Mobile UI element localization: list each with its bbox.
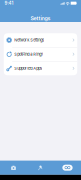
button[interactable]: SpotFind a Ring?	[4, 47, 77, 61]
button[interactable]: Supported Apps	[4, 61, 77, 75]
staticText: Supported Apps	[14, 66, 42, 71]
button[interactable]: Network Settings	[4, 33, 77, 47]
staticText: Network Settings	[14, 38, 44, 42]
button[interactable]: Profile	[27, 161, 54, 175]
button[interactable]: Discover	[54, 161, 81, 175]
button[interactable]: Camera	[0, 161, 27, 175]
staticText: 9:41	[4, 0, 13, 6]
staticText: Settings	[30, 15, 50, 22]
staticText: SpotFind a Ring?	[14, 52, 43, 57]
